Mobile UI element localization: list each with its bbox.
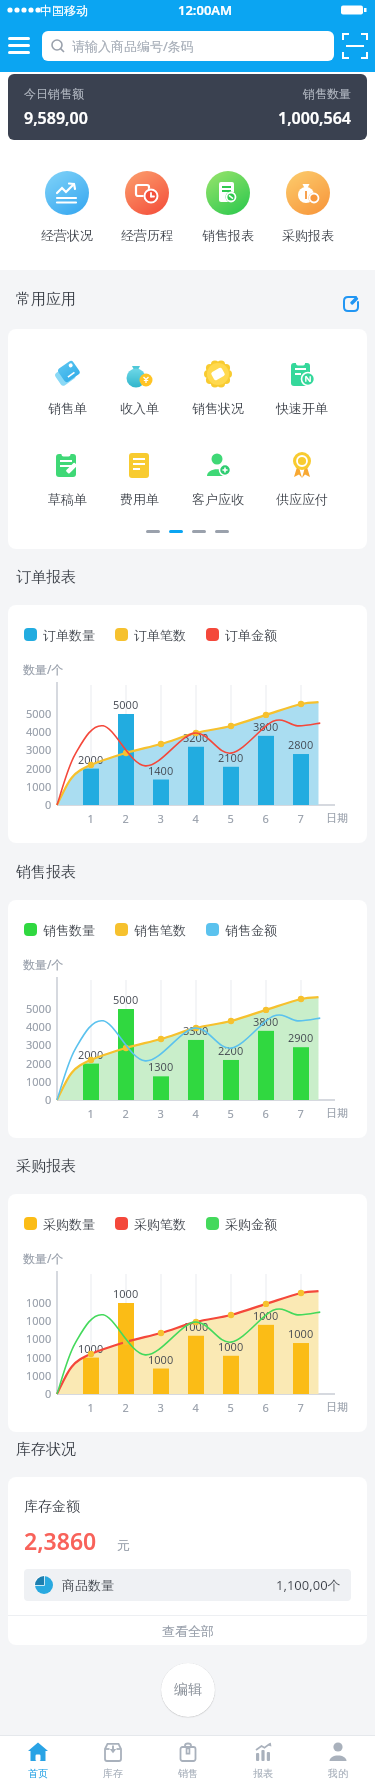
- staticText: 商品数量: [62, 1577, 114, 1593]
- button[interactable]: 库存: [75, 1740, 150, 1780]
- staticText: 经营历程: [121, 227, 173, 243]
- staticText: 报表: [253, 1767, 273, 1780]
- staticText: 采购报表: [282, 227, 334, 243]
- staticText: 订单报表: [16, 568, 76, 587]
- button[interactable]: 销售单: [47, 354, 87, 416]
- staticText: 库存金额: [24, 1498, 80, 1516]
- button[interactable]: [341, 294, 359, 312]
- staticText: 常用应用: [16, 290, 76, 309]
- button[interactable]: [8, 35, 34, 57]
- button[interactable]: 商品数量: [24, 1569, 351, 1601]
- staticText: 销售报表: [202, 227, 254, 243]
- button[interactable]: 经营状况: [41, 171, 93, 243]
- staticText: 1,100,00个: [276, 1576, 341, 1594]
- button[interactable]: 编辑: [161, 1663, 215, 1717]
- button[interactable]: 供应应付: [276, 445, 328, 507]
- button[interactable]: 销售: [150, 1740, 225, 1780]
- staticText: 库存: [103, 1767, 123, 1780]
- button[interactable]: [8, 605, 367, 843]
- staticText: 2,3860: [24, 1525, 97, 1556]
- staticText: 快速开单: [276, 400, 328, 416]
- staticText: 中国移动: [40, 3, 88, 18]
- button[interactable]: 收入单: [119, 354, 159, 416]
- button[interactable]: 销售状况: [192, 354, 244, 416]
- staticText: 费用单: [120, 491, 159, 507]
- button[interactable]: 费用单: [119, 445, 159, 507]
- button[interactable]: 查看全部: [8, 1616, 367, 1645]
- button[interactable]: 经营历程: [121, 171, 173, 243]
- staticText: 销售数量: [303, 86, 351, 101]
- staticText: 销售: [178, 1767, 198, 1780]
- staticText: 销售状况: [192, 400, 244, 416]
- staticText: 供应应付: [276, 491, 328, 507]
- staticText: 客户应收: [192, 491, 244, 507]
- staticText: 9,589,00: [24, 107, 88, 129]
- staticText: 编辑: [174, 1681, 202, 1699]
- staticText: 首页: [28, 1767, 48, 1780]
- button[interactable]: 今日销售额: [8, 74, 367, 140]
- staticText: 元: [117, 1537, 130, 1553]
- staticText: 草稿单: [48, 491, 87, 507]
- button[interactable]: 采购报表: [282, 171, 334, 243]
- button[interactable]: [343, 34, 367, 58]
- button[interactable]: [8, 900, 367, 1138]
- staticText: 1,000,564: [278, 107, 351, 129]
- staticText: 采购报表: [16, 1157, 76, 1176]
- staticText: 销售单: [48, 400, 87, 416]
- button[interactable]: 我的: [300, 1740, 375, 1780]
- button[interactable]: 请输入商品编号/条码: [42, 31, 334, 61]
- staticText: 我的: [328, 1767, 348, 1780]
- button[interactable]: 快速开单: [276, 354, 328, 416]
- staticText: 请输入商品编号/条码: [72, 37, 194, 55]
- staticText: 库存状况: [16, 1440, 76, 1459]
- button[interactable]: 首页: [0, 1740, 75, 1780]
- button[interactable]: 销售报表: [202, 171, 254, 243]
- staticText: 今日销售额: [24, 86, 84, 101]
- staticText: 查看全部: [162, 1623, 214, 1639]
- staticText: 12:00AM: [178, 1, 233, 19]
- button[interactable]: 客户应收: [192, 445, 244, 507]
- button[interactable]: 草稿单: [47, 445, 87, 507]
- button[interactable]: [8, 1194, 367, 1432]
- staticText: 收入单: [120, 400, 159, 416]
- staticText: 经营状况: [41, 227, 93, 243]
- button[interactable]: 报表: [225, 1740, 300, 1780]
- staticText: 销售报表: [16, 863, 76, 882]
